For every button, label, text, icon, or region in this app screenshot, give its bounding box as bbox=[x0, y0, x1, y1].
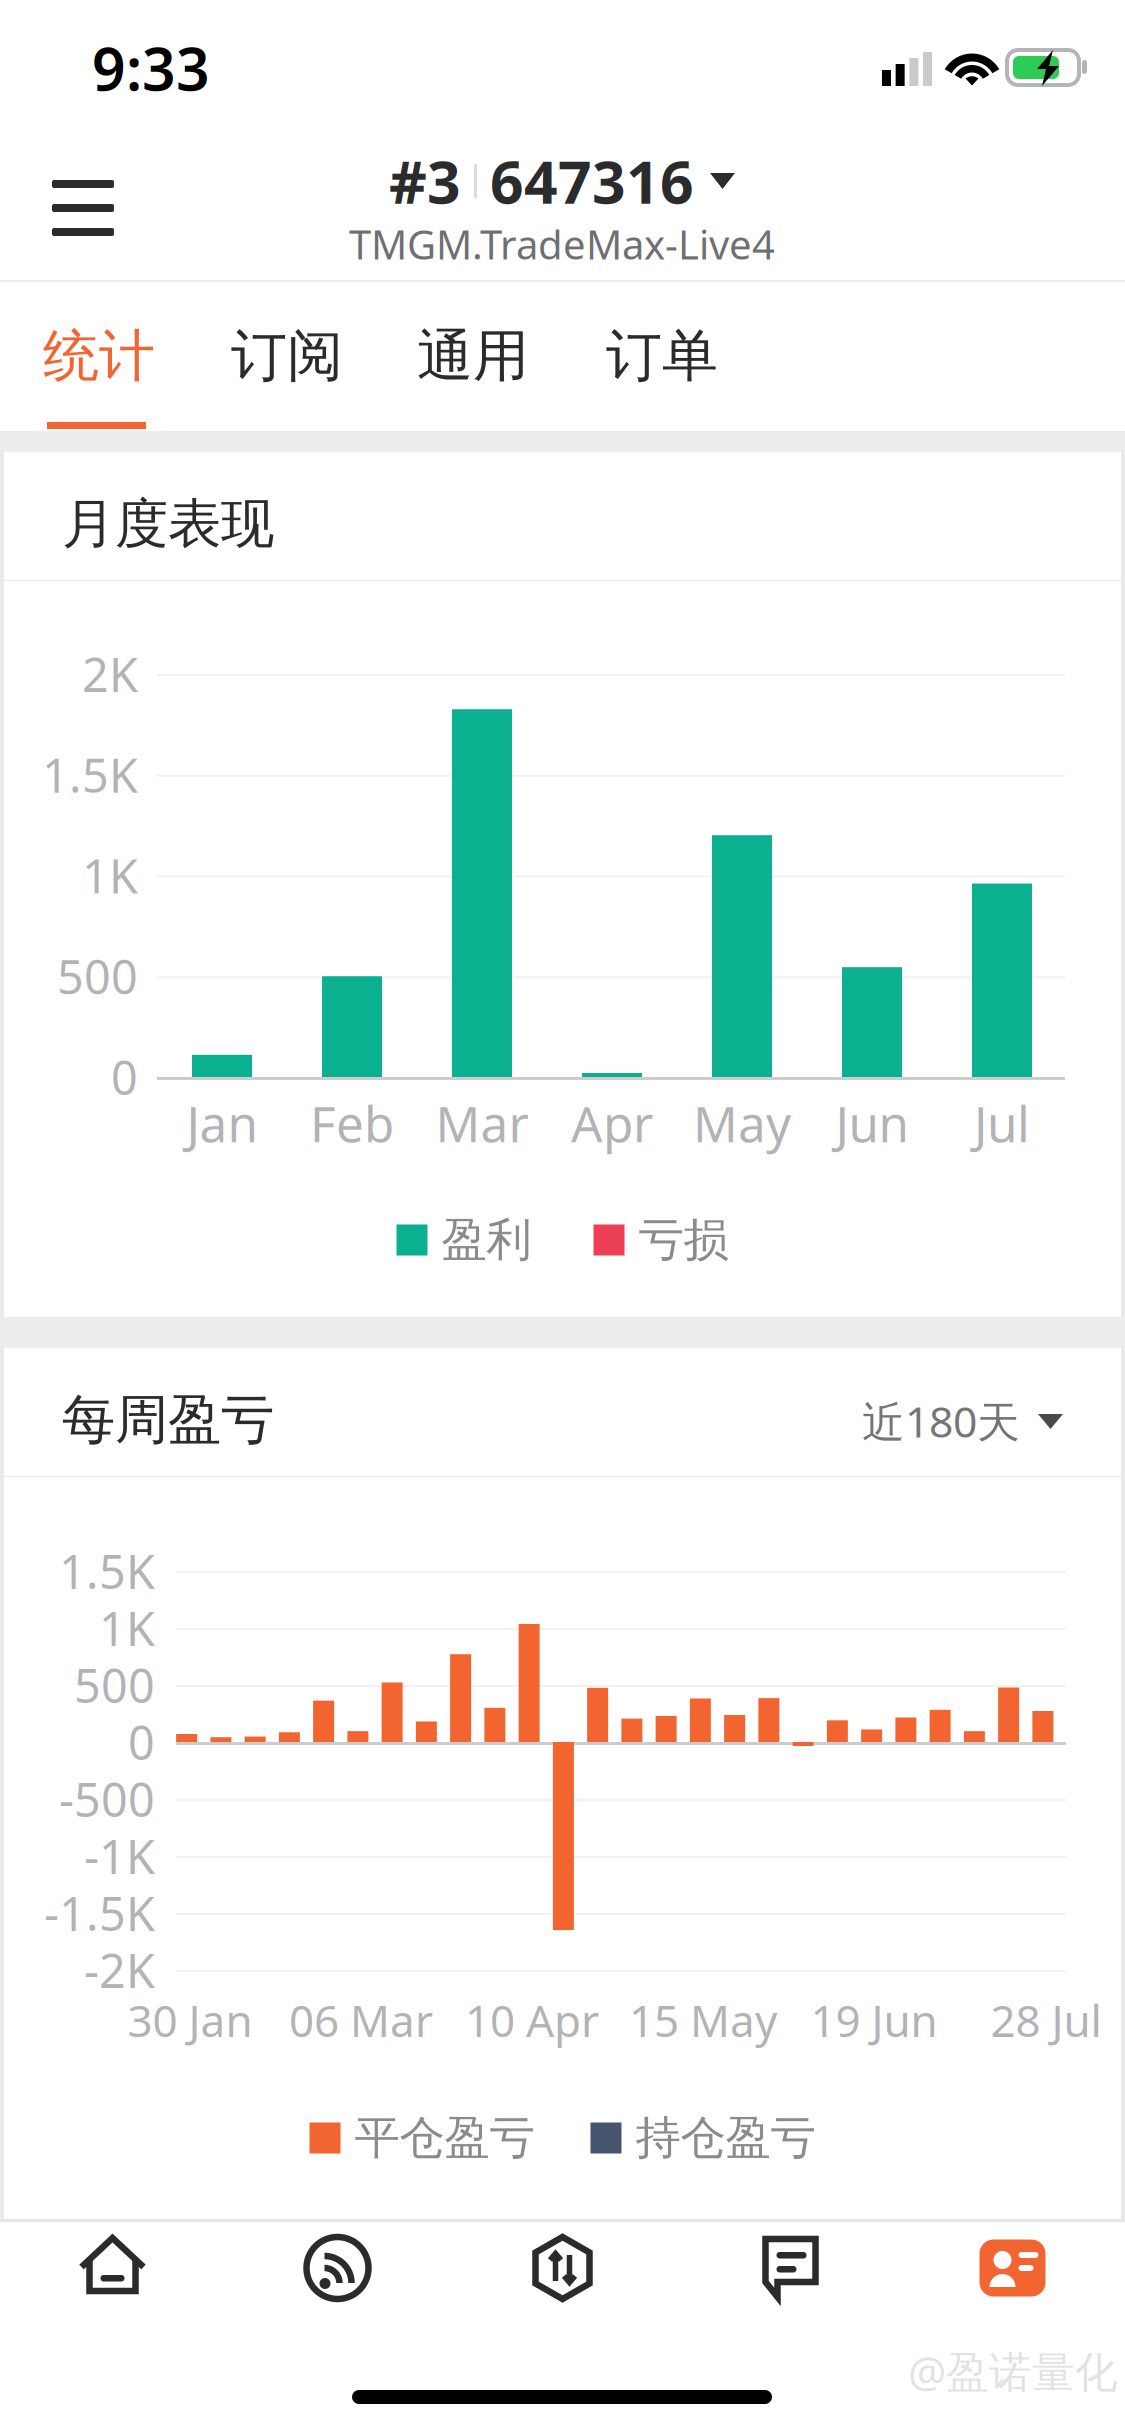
button[interactable]: 首页 bbox=[0, 2222, 225, 2314]
staticText: Feb bbox=[310, 1090, 394, 1156]
staticText: 0 bbox=[128, 1711, 155, 1773]
button[interactable]: 我的 bbox=[900, 2222, 1125, 2314]
button[interactable]: 订阅 bbox=[203, 282, 363, 431]
staticText: -500 bbox=[59, 1768, 155, 1830]
staticText: 1.5K bbox=[42, 744, 138, 806]
staticText: TMGM.TradeMax-Live4 bbox=[349, 217, 775, 270]
staticText: 订阅 bbox=[231, 322, 343, 390]
staticText: 500 bbox=[74, 1654, 155, 1716]
staticText: 15 May bbox=[629, 1991, 777, 2049]
staticText: 月度表现 bbox=[62, 491, 274, 557]
staticText: 28 Jul bbox=[990, 1991, 1101, 2049]
staticText: 500 bbox=[57, 945, 138, 1007]
staticText: 647316 bbox=[490, 142, 694, 220]
staticText: 每周盈亏 bbox=[62, 1387, 274, 1453]
staticText: Mar bbox=[435, 1090, 528, 1156]
staticText: Jan bbox=[186, 1090, 257, 1156]
staticText: 通用 bbox=[417, 322, 529, 390]
staticText: 30 Jan bbox=[127, 1991, 252, 2049]
staticText: 亏损 bbox=[638, 1212, 728, 1268]
staticText: 9:33 bbox=[92, 29, 210, 107]
staticText: 持仓盈亏 bbox=[635, 2110, 815, 2166]
button[interactable]: 统计 bbox=[15, 282, 175, 431]
staticText: 10 Apr bbox=[465, 1991, 599, 2049]
staticText: 平仓盈亏 bbox=[354, 2110, 534, 2166]
button[interactable]: 订单 bbox=[578, 282, 738, 431]
staticText: 盈利 bbox=[441, 1212, 531, 1268]
button[interactable]: 消息 bbox=[675, 2222, 900, 2314]
button[interactable]: 信号 bbox=[225, 2222, 450, 2314]
staticText: 0 bbox=[111, 1046, 138, 1108]
staticText: Jul bbox=[974, 1090, 1030, 1156]
staticText: 1K bbox=[99, 1597, 155, 1659]
staticText: 2K bbox=[82, 643, 138, 705]
staticText: 1K bbox=[82, 844, 138, 906]
staticText: 19 Jun bbox=[810, 1991, 937, 2049]
staticText: 近180天 bbox=[862, 1393, 1020, 1449]
staticText: 统计 bbox=[43, 322, 155, 390]
button[interactable]: 菜单 bbox=[22, 142, 144, 264]
button[interactable]: 交易 bbox=[450, 2222, 675, 2314]
staticText: Apr bbox=[571, 1090, 653, 1156]
staticText: 1.5K bbox=[59, 1540, 155, 1602]
staticText: 订单 bbox=[606, 322, 718, 390]
staticText: -1K bbox=[84, 1825, 155, 1887]
staticText: May bbox=[693, 1090, 791, 1156]
button[interactable]: 近180天 bbox=[760, 1392, 1063, 1450]
staticText: 06 Mar bbox=[289, 1991, 433, 2049]
button[interactable]: 通用 bbox=[389, 282, 549, 431]
staticText: -1.5K bbox=[44, 1882, 155, 1944]
staticText: -2K bbox=[84, 1939, 155, 2001]
staticText: #3 bbox=[389, 142, 461, 220]
staticText: Jun bbox=[835, 1090, 908, 1156]
staticText: @盈诺量化 bbox=[908, 2343, 1118, 2399]
